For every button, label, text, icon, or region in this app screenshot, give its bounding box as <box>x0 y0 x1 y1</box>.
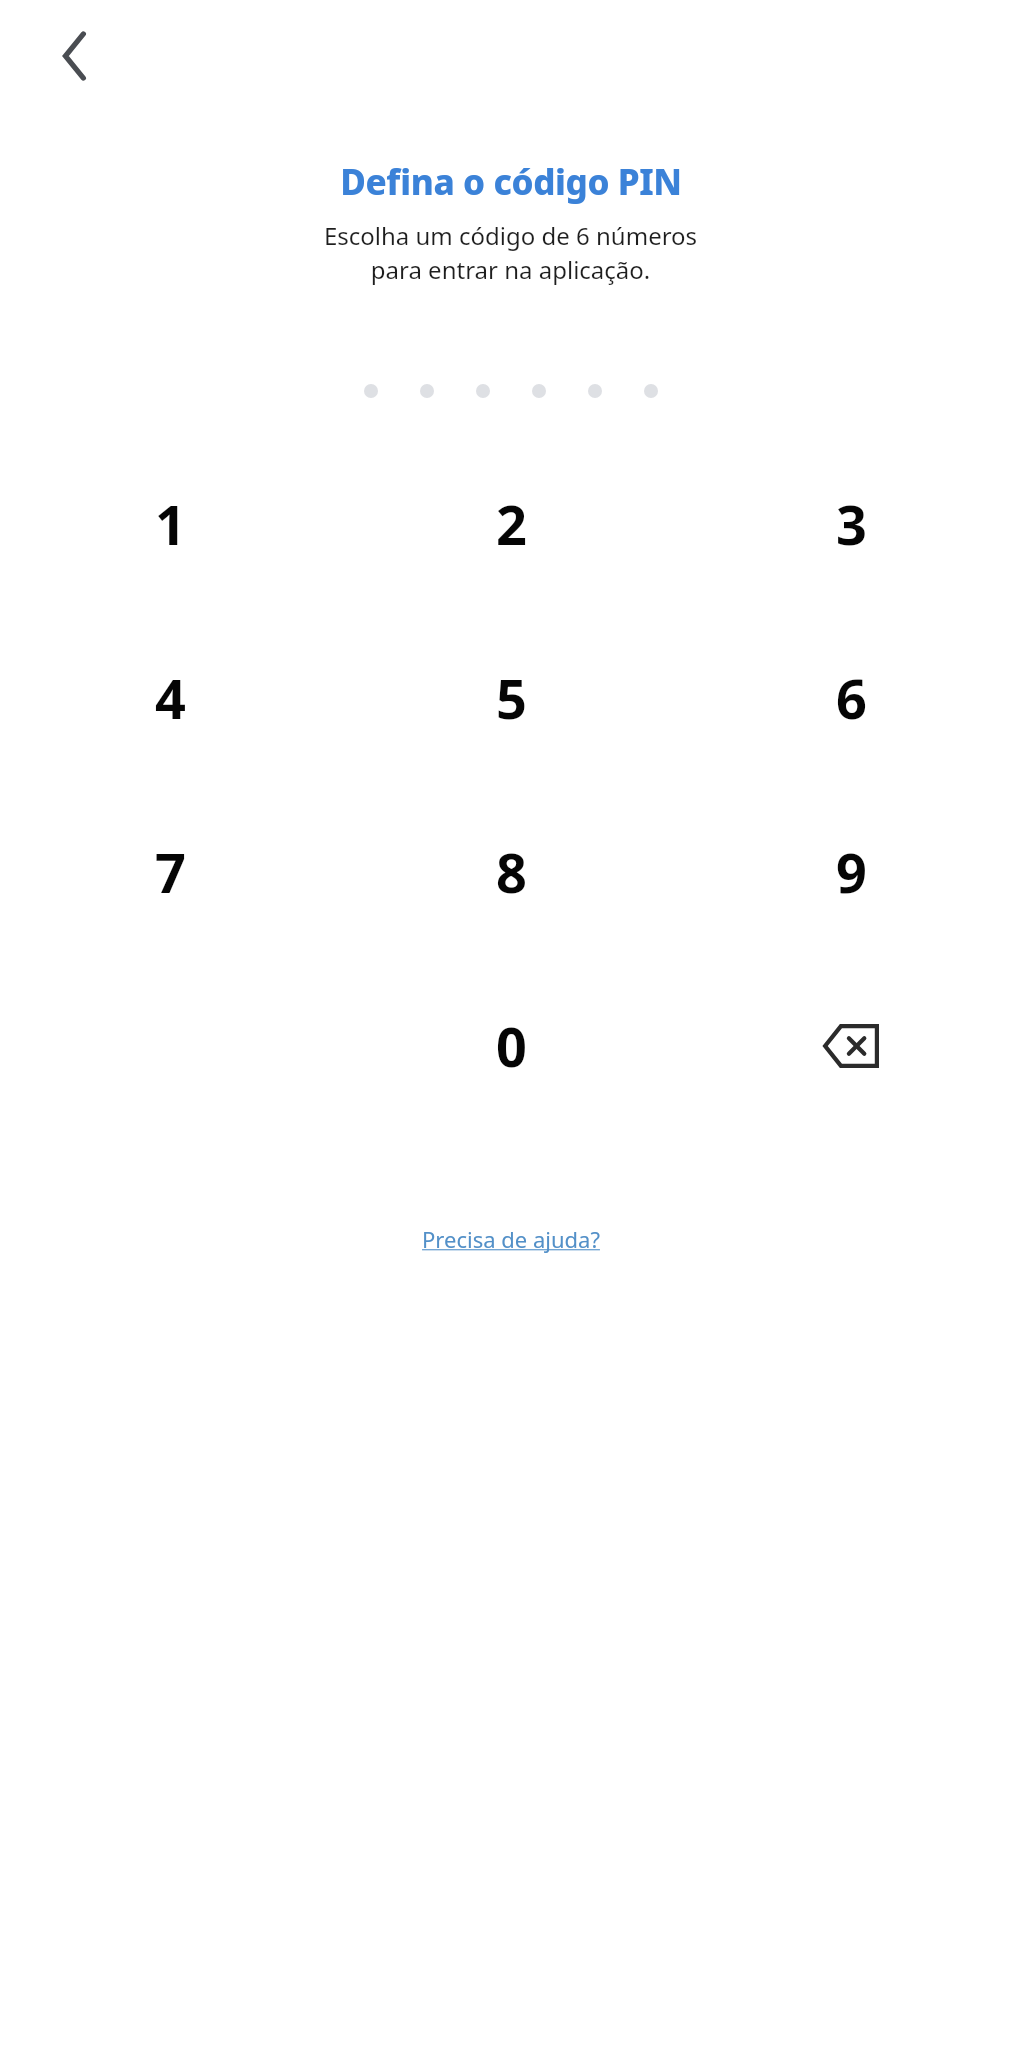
button[interactable]: 2 <box>341 474 681 574</box>
button[interactable]: Backspace <box>681 996 1021 1096</box>
button[interactable]: 8 <box>341 822 681 922</box>
staticText: 4 <box>155 661 186 735</box>
button[interactable]: 5 <box>341 648 681 748</box>
staticText: 6 <box>836 661 867 735</box>
button[interactable]: 3 <box>681 474 1021 574</box>
button[interactable]: Precisa de ajuda? <box>406 1214 616 1264</box>
staticText: 9 <box>836 835 867 909</box>
button[interactable]: 4 <box>0 648 341 748</box>
staticText: 1 <box>155 487 186 561</box>
staticText: 0 <box>496 1009 527 1083</box>
staticText: Precisa de ajuda? <box>422 1224 600 1254</box>
staticText: 8 <box>496 835 527 909</box>
button[interactable]: 6 <box>681 648 1021 748</box>
staticText: Defina o código PIN <box>340 158 682 206</box>
button[interactable]: 9 <box>681 822 1021 922</box>
button[interactable]: 0 <box>341 996 681 1096</box>
staticText: 5 <box>496 661 527 735</box>
button[interactable]: 7 <box>0 822 341 922</box>
button[interactable]: 1 <box>0 474 341 574</box>
staticText: 2 <box>496 487 527 561</box>
staticText: 7 <box>155 835 186 909</box>
staticText: 3 <box>836 487 867 561</box>
staticText: Escolha um código de 6 números para entr… <box>0 219 1021 286</box>
button[interactable]: Back <box>28 14 122 98</box>
